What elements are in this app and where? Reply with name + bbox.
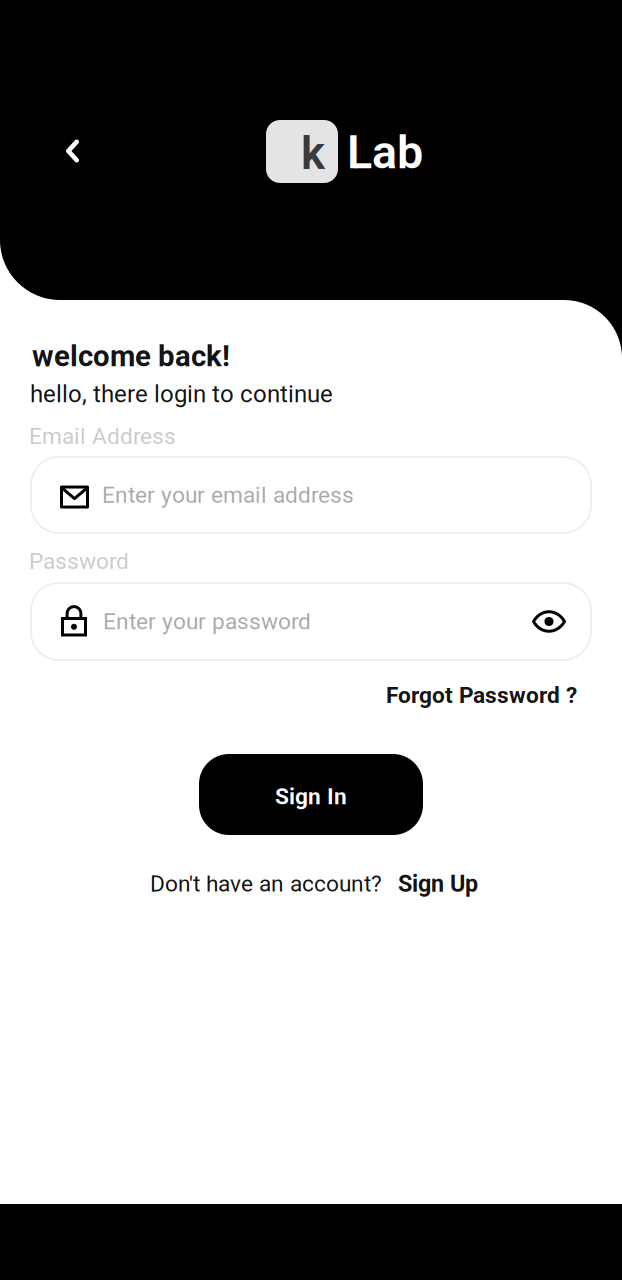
staticText: Forgot Password ?	[386, 682, 577, 709]
button[interactable]: Show password	[523, 595, 575, 647]
button[interactable]: Forgot Password ?	[378, 676, 585, 715]
staticText: Don't have an account?	[150, 870, 382, 897]
staticText: Sign Up	[398, 870, 478, 897]
button[interactable]: Back	[44, 123, 100, 179]
button[interactable]: Sign Up	[398, 870, 478, 897]
staticText: Email Address	[29, 423, 176, 450]
button[interactable]: Sign In	[199, 754, 423, 835]
staticText: Enter your email address	[102, 482, 354, 508]
staticText: k	[301, 127, 325, 180]
staticText: Lab	[347, 125, 423, 180]
button[interactable]: Enter your password	[31, 583, 591, 660]
staticText: Sign In	[275, 783, 347, 810]
button[interactable]: Enter your email address	[31, 457, 591, 533]
staticText: welcome back!	[32, 339, 230, 373]
staticText: hello, there login to continue	[30, 380, 333, 408]
staticText: Enter your password	[103, 608, 311, 635]
staticText: Password	[29, 548, 129, 575]
